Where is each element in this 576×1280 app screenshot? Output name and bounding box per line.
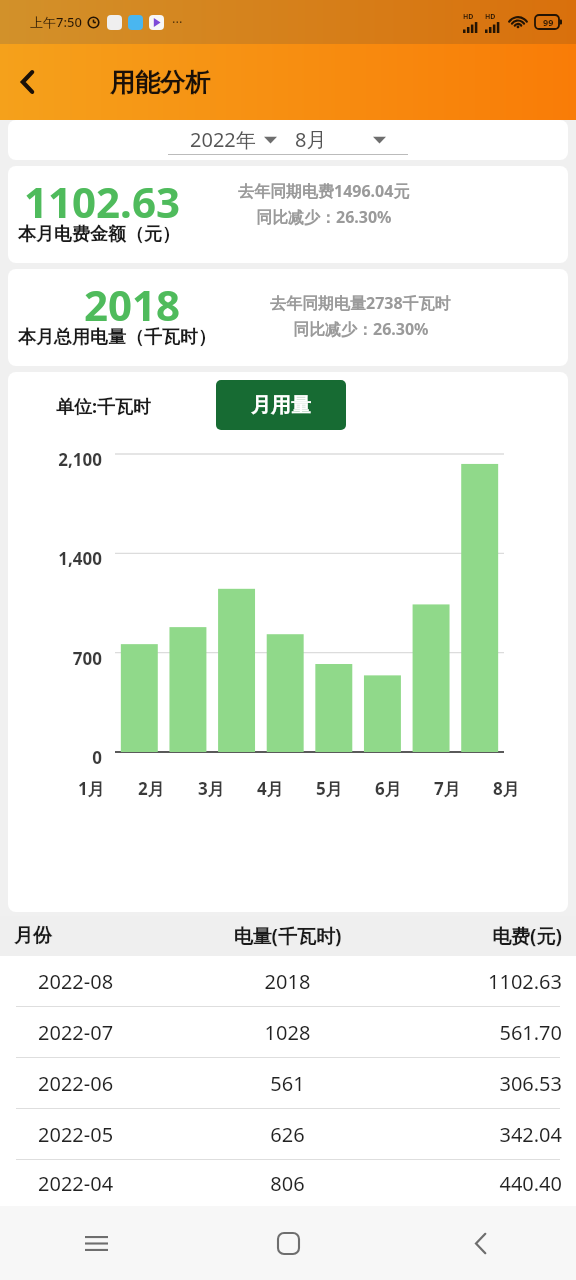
- button[interactable]: Back: [0, 54, 56, 110]
- button[interactable]: 2022年: [188, 126, 279, 153]
- staticText: 1102.63: [393, 968, 562, 995]
- button[interactable]: Home: [192, 1206, 384, 1280]
- staticText: 2022-05: [38, 1121, 182, 1148]
- staticText: 2018: [182, 968, 393, 995]
- staticText: 1月: [78, 777, 105, 800]
- staticText: 2022-06: [38, 1070, 182, 1097]
- staticText: 700: [14, 647, 102, 670]
- staticText: 上午7:50: [30, 13, 82, 31]
- staticText: 7月: [434, 777, 461, 800]
- staticText: 月用量: [251, 393, 311, 418]
- staticText: 去年同期电费1496.04元: [238, 180, 410, 202]
- staticText: 342.04: [393, 1121, 562, 1148]
- staticText: 4月: [257, 777, 284, 800]
- button[interactable]: 2022-05: [0, 1109, 576, 1160]
- staticText: HD: [485, 12, 496, 22]
- staticText: 806: [182, 1170, 393, 1197]
- staticText: 电费(元): [393, 923, 562, 949]
- staticText: 306.53: [393, 1070, 562, 1097]
- staticText: 2022-08: [38, 968, 182, 995]
- staticText: 月份: [14, 924, 182, 948]
- button[interactable]: 2022-08: [0, 956, 576, 1007]
- staticText: 本月电费金额（元）: [18, 223, 180, 246]
- staticText: 2022-07: [38, 1019, 182, 1046]
- staticText: ···: [172, 13, 183, 31]
- staticText: 440.40: [393, 1170, 562, 1197]
- staticText: 1028: [182, 1019, 393, 1046]
- staticText: 626: [182, 1121, 393, 1148]
- staticText: HD: [463, 12, 474, 22]
- staticText: 561.70: [393, 1019, 562, 1046]
- button[interactable]: Recent apps: [0, 1206, 192, 1280]
- staticText: 1102.63: [24, 173, 180, 230]
- staticText: 电量(千瓦时): [182, 923, 393, 949]
- staticText: 8月: [493, 777, 520, 800]
- staticText: 561: [182, 1070, 393, 1097]
- button[interactable]: Back: [384, 1206, 576, 1280]
- staticText: 2月: [138, 777, 165, 800]
- staticText: 99: [543, 16, 554, 28]
- staticText: 2022年: [190, 126, 256, 153]
- staticText: 本月总用电量（千瓦时）: [18, 326, 216, 349]
- staticText: 1,400: [14, 547, 102, 570]
- staticText: 2018: [84, 276, 181, 333]
- staticText: 同比减少：26.30%: [293, 318, 429, 340]
- staticText: 3月: [198, 777, 225, 800]
- staticText: 0: [14, 746, 102, 769]
- button[interactable]: 月用量: [216, 380, 346, 430]
- button[interactable]: 2022-06: [0, 1058, 576, 1109]
- button[interactable]: 8月: [293, 126, 388, 153]
- staticText: 2,100: [14, 448, 102, 471]
- staticText: 用能分析: [110, 67, 210, 98]
- staticText: 5月: [316, 777, 343, 800]
- button[interactable]: 2022-07: [0, 1007, 576, 1058]
- button[interactable]: 2022-04: [0, 1160, 576, 1206]
- staticText: 2022-04: [38, 1170, 182, 1197]
- staticText: 同比减少：26.30%: [256, 206, 392, 228]
- staticText: 8月: [295, 126, 327, 153]
- staticText: 去年同期电量2738千瓦时: [270, 292, 451, 314]
- staticText: 6月: [375, 777, 402, 800]
- staticText: 单位:千瓦时: [56, 394, 152, 419]
